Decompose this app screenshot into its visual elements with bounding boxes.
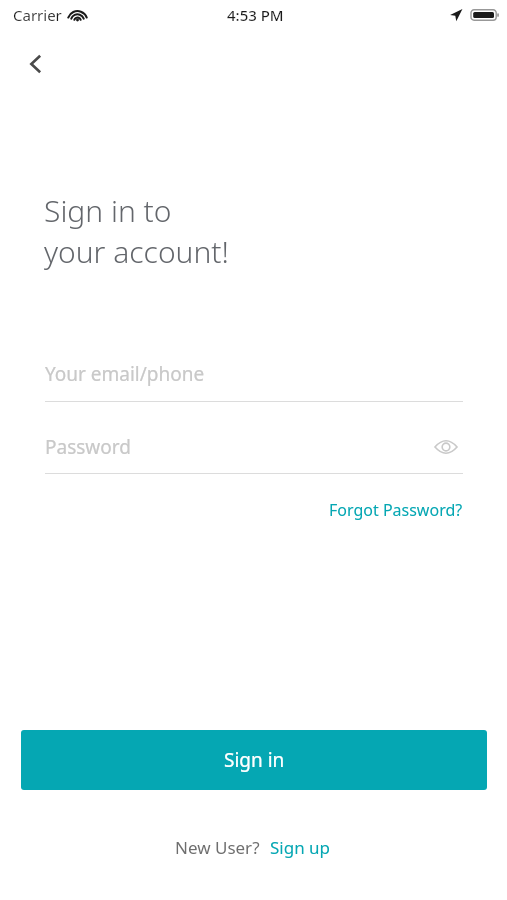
staticText: Sign in xyxy=(224,747,285,773)
staticText: your account! xyxy=(44,231,229,272)
staticText: Your email/phone xyxy=(45,361,205,387)
button[interactable]: Back xyxy=(10,40,62,88)
staticText: Forgot Password? xyxy=(329,499,463,521)
button[interactable]: Forgot Password? xyxy=(300,492,463,528)
button[interactable]: Sign up xyxy=(268,832,333,863)
button[interactable]: Show password xyxy=(429,430,463,464)
staticText: Sign in to xyxy=(44,190,172,231)
staticText: Carrier xyxy=(13,5,62,25)
button[interactable]: Password xyxy=(45,425,463,474)
staticText: Sign up xyxy=(270,836,331,859)
staticText: 4:53 PM xyxy=(227,5,284,25)
staticText: New User? xyxy=(175,836,260,859)
button[interactable]: Sign in xyxy=(21,730,487,790)
button[interactable]: Your email/phone xyxy=(45,352,463,402)
staticText: Password xyxy=(45,434,131,460)
